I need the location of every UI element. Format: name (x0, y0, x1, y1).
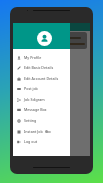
button[interactable]: My Profile (13, 52, 70, 63)
staticText: Setting (24, 118, 37, 123)
staticText: Post job (24, 86, 38, 91)
staticText: My Profile (24, 55, 42, 60)
staticText: Message Box (24, 107, 47, 112)
button[interactable]: Setting (13, 115, 70, 126)
button[interactable]: Log out (13, 136, 70, 147)
button[interactable]: Edit Account Details (13, 73, 70, 84)
button[interactable]: Edit Basic Details (13, 62, 70, 73)
button[interactable]: Instant Job (13, 126, 70, 137)
button[interactable]: Message Box (13, 104, 70, 115)
staticText: Log out (24, 139, 38, 144)
staticText: Edit Account Details (24, 76, 59, 81)
staticText: Edit Basic Details (24, 65, 54, 70)
button[interactable] (13, 23, 70, 49)
button[interactable]: Post job (13, 83, 70, 94)
button[interactable]: Job Sdigram (13, 94, 70, 105)
staticText: Instant Job (24, 129, 43, 134)
staticText: Job Sdigram (24, 97, 45, 102)
